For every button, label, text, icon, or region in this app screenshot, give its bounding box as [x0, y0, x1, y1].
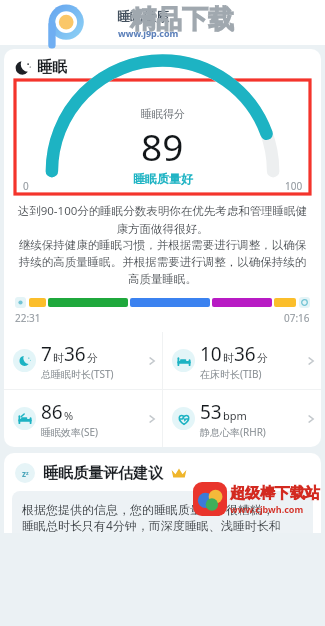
staticText: % — [64, 408, 74, 423]
staticText: 睡眠 — [37, 58, 67, 77]
staticText: 36 — [234, 341, 256, 367]
staticText: 10 — [200, 341, 222, 367]
staticText: 时 — [53, 351, 64, 365]
staticText: 分 — [257, 351, 268, 365]
staticText: 07:16 — [284, 311, 310, 325]
staticText: bpm — [223, 408, 247, 423]
staticText: 根据您提供的信息，您的睡眠质量似乎很糟糕， — [22, 502, 274, 517]
staticText: 36 — [64, 341, 86, 367]
staticText: www.j9p.com — [118, 27, 179, 39]
staticText: 达到90-100分的睡眠分数表明你在优先考虑和管理睡眠健康方面做得很好。 — [15, 203, 310, 236]
button[interactable]: 53 — [163, 390, 321, 447]
staticText: 睡眠质量好 — [133, 171, 193, 186]
button[interactable]: 7 — [4, 332, 162, 389]
staticText: 22:31 — [15, 311, 41, 325]
staticText: 精品下载 — [130, 3, 234, 36]
staticText: 静息心率(RHR) — [200, 425, 266, 439]
staticText: 86 — [41, 399, 63, 425]
staticText: 分 — [87, 351, 98, 365]
button[interactable]: 86 — [4, 390, 162, 447]
staticText: 0 — [23, 179, 29, 193]
staticText: 睡眠总时长只有4分钟，而深度睡眠、浅睡时长和 — [22, 517, 281, 533]
button[interactable]: Sleep time — [15, 297, 26, 308]
staticText: 在床时长(TIB) — [200, 367, 262, 381]
staticText: 睡眠健康 — [117, 8, 169, 24]
staticText: 超级棒下载站 — [230, 484, 320, 503]
staticText: 89 — [141, 121, 184, 171]
staticText: 7 — [41, 341, 52, 367]
button[interactable]: 10 — [163, 332, 321, 389]
staticText: 时 — [223, 351, 234, 365]
staticText: 睡眠效率(SE) — [41, 425, 99, 439]
staticText: 100 — [285, 179, 303, 193]
staticText: 53 — [200, 399, 222, 425]
button[interactable]: 睡眠 — [15, 58, 321, 77]
staticText: zᶻ — [22, 468, 29, 479]
staticText: 继续保持健康的睡眠习惯，并根据需要进行调整，以确保持续的高质量睡眠。并根据需要进… — [15, 238, 310, 286]
button[interactable]: Wake time — [299, 297, 310, 308]
staticText: 睡眠质量评估建议 — [43, 464, 163, 483]
staticText: 睡眠得分 — [141, 107, 185, 121]
staticText: www.cjbwh.com — [230, 503, 304, 515]
staticText: 总睡眠时长(TST) — [41, 367, 114, 381]
button[interactable]: zᶻ — [15, 463, 321, 483]
